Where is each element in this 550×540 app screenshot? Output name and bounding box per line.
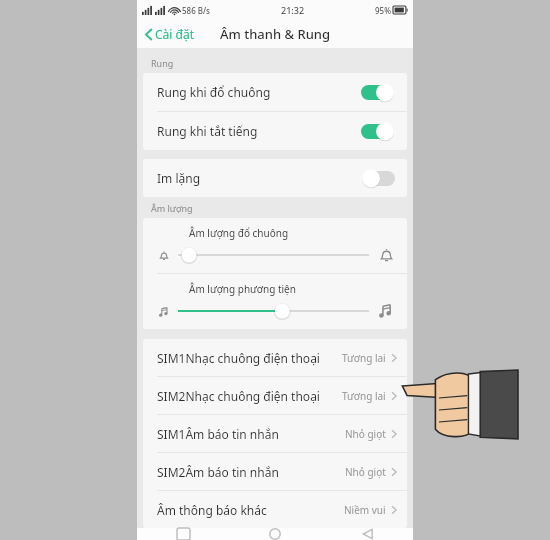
staticText: Tương lai	[342, 351, 386, 365]
staticText: Âm lượng phương tiện	[189, 282, 296, 296]
button[interactable]: SIM2Âm báo tin nhắn	[143, 453, 407, 490]
staticText: SIM2Nhạc chuông điện thoại	[157, 388, 342, 404]
staticText: Âm thông báo khác	[157, 502, 344, 518]
button[interactable]: Cài đặt	[142, 24, 198, 44]
staticText: Âm thanh & Rung	[220, 25, 330, 43]
staticText: Im lặng	[157, 170, 361, 186]
button[interactable]: Back	[321, 528, 413, 540]
button[interactable]: Âm thông báo khác	[143, 491, 407, 528]
staticText: 586 B/s	[182, 5, 211, 16]
button[interactable]: SIM1Nhạc chuông điện thoại	[143, 339, 407, 376]
button[interactable]: Home	[229, 528, 321, 540]
staticText: SIM1Âm báo tin nhắn	[157, 426, 345, 442]
staticText: Nhỏ giọt	[345, 427, 386, 441]
button[interactable]: Âm lượng đổ chuông	[143, 218, 407, 273]
staticText: SIM1Nhạc chuông điện thoại	[157, 350, 342, 366]
staticText: Rung	[151, 57, 174, 69]
button[interactable]: SIM1Âm báo tin nhắn	[143, 415, 407, 452]
staticText: Âm lượng đổ chuông	[189, 226, 289, 240]
staticText: 95%	[375, 5, 391, 16]
button[interactable]: Im lặng	[143, 159, 407, 197]
staticText: Cài đặt	[155, 26, 195, 42]
staticText: Rung khi đổ chuông	[157, 84, 361, 100]
staticText: Âm lượng	[151, 202, 193, 214]
button[interactable]: Rung khi tắt tiếng	[143, 112, 407, 150]
staticText: 21:32	[281, 4, 305, 16]
staticText: Tương lai	[342, 389, 386, 403]
button[interactable]: SIM2Nhạc chuông điện thoại	[143, 377, 407, 414]
button[interactable]: Rung khi đổ chuông	[143, 73, 407, 111]
button[interactable]: Recent apps	[137, 528, 229, 540]
staticText: SIM2Âm báo tin nhắn	[157, 464, 345, 480]
staticText: Nhỏ giọt	[345, 465, 386, 479]
button[interactable]: Âm lượng phương tiện	[143, 274, 407, 329]
staticText: Rung khi tắt tiếng	[157, 123, 361, 139]
staticText: Niềm vui	[344, 503, 386, 517]
